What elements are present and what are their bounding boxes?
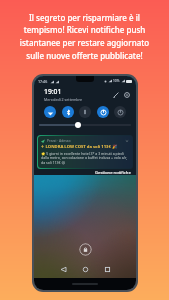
button[interactable]: Interruttore [62,106,74,118]
staticText: Prezzi · Adesso [47,138,71,143]
button[interactable]: Impostazioni [121,89,132,100]
button[interactable]: Sblocca [79,243,92,256]
button[interactable]: Home [78,262,92,276]
staticText: 10% [113,79,120,83]
button[interactable]: Gestione notifiche [95,170,136,176]
button[interactable]: Interruttore [97,106,109,118]
staticText: Mercoledì 2 settembre [44,97,82,102]
button[interactable]: Recenti [100,262,114,276]
staticText: 🌟 5 giorni in eccellente hotel 3* a 3 mi… [41,151,129,165]
button[interactable]: Indietro [56,262,70,276]
button[interactable]: Interruttore [79,106,91,118]
button[interactable]: Interruttore [114,106,126,118]
button[interactable]: Prezzi · Adesso [38,136,132,168]
staticText: Il segreto per risparmiare è il tempismo… [12,12,157,61]
staticText: 17:46 [38,79,48,84]
staticText: 19:01 [44,87,62,96]
button[interactable]: Interruttore [44,106,56,118]
staticText: ✈️ LONDRA LOW COST da soli 113€ 🎉 [41,144,118,150]
button[interactable]: Modifica [110,89,121,100]
